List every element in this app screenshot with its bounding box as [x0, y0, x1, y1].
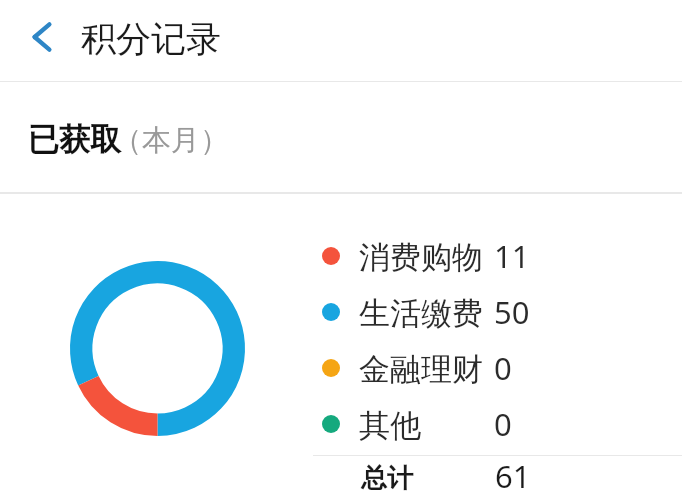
button[interactable]: 其他: [313, 396, 682, 452]
staticText: 积分记录: [81, 17, 221, 61]
staticText: 0: [494, 403, 512, 445]
button[interactable]: 消费购物: [313, 228, 682, 284]
staticText: 消费购物: [359, 238, 483, 277]
staticText: 50: [494, 291, 530, 333]
staticText: 总计: [361, 462, 413, 491]
button[interactable]: 总计: [313, 456, 682, 491]
staticText: 其他: [359, 406, 421, 445]
staticText: 61: [495, 455, 531, 490]
button[interactable]: 金融理财: [313, 340, 682, 396]
staticText: 0: [494, 347, 512, 389]
button[interactable]: Back: [16, 11, 68, 63]
staticText: 生活缴费: [359, 294, 483, 333]
button[interactable]: 生活缴费: [313, 284, 682, 340]
staticText: 金融理财: [359, 350, 483, 389]
staticText: 11: [494, 235, 530, 277]
staticText: （本月）: [113, 122, 229, 159]
staticText: 已获取: [28, 120, 121, 159]
